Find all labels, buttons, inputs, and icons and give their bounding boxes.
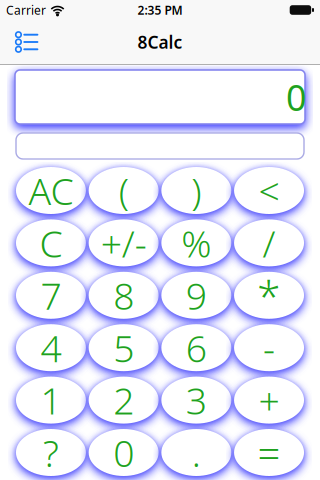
staticText: 8Calc [137,30,182,53]
button[interactable]: 0 [89,429,159,476]
button[interactable]: < [234,167,304,214]
staticText: 4 [40,323,61,372]
staticText: - [263,323,275,372]
button[interactable]: 6 [161,324,231,371]
button[interactable] [16,133,304,159]
staticText: 6 [186,323,207,372]
button[interactable]: 8 [89,272,159,319]
staticText: 0 [286,73,307,121]
staticText: 9 [186,270,207,320]
button[interactable]: + [234,377,304,424]
staticText: C [39,218,62,268]
button[interactable]: AC [16,167,86,214]
button[interactable]: 3 [161,377,231,424]
staticText: +/- [101,218,147,268]
button[interactable]: ) [161,167,231,214]
button[interactable]: C [16,219,86,266]
staticText: 0 [113,428,134,477]
staticText: / [263,218,276,268]
staticText: ) [191,166,201,215]
staticText: 8 [113,270,134,320]
button[interactable]: = [234,429,304,476]
button[interactable]: - [234,324,304,371]
staticText: ( [119,166,129,215]
staticText: AC [28,166,73,215]
button[interactable]: 4 [16,324,86,371]
staticText: 2 [113,375,134,425]
button[interactable]: 7 [16,272,86,319]
staticText: + [259,375,280,425]
button[interactable]: ( [89,167,159,214]
button[interactable] [0,32,38,52]
staticText: 1 [40,375,61,425]
button[interactable]: ? [16,429,86,476]
button[interactable]: 1 [16,377,86,424]
staticText: 2:35 PM [137,2,182,18]
staticText: * [257,267,281,324]
staticText: 7 [40,270,61,320]
staticText: Carrier [6,2,46,18]
staticText: = [258,426,281,479]
button[interactable]: / [234,219,304,266]
staticText: . [192,428,201,477]
staticText: 3 [186,375,207,425]
button[interactable]: * [234,272,304,319]
button[interactable]: . [161,429,231,476]
staticText: < [259,166,280,215]
button[interactable]: 2 [89,377,159,424]
button[interactable]: +/- [89,219,159,266]
button[interactable]: % [161,219,231,266]
button[interactable]: 9 [161,272,231,319]
staticText: 5 [113,323,134,372]
staticText: % [181,218,211,268]
button[interactable]: 5 [89,324,159,371]
staticText: ? [43,428,59,477]
